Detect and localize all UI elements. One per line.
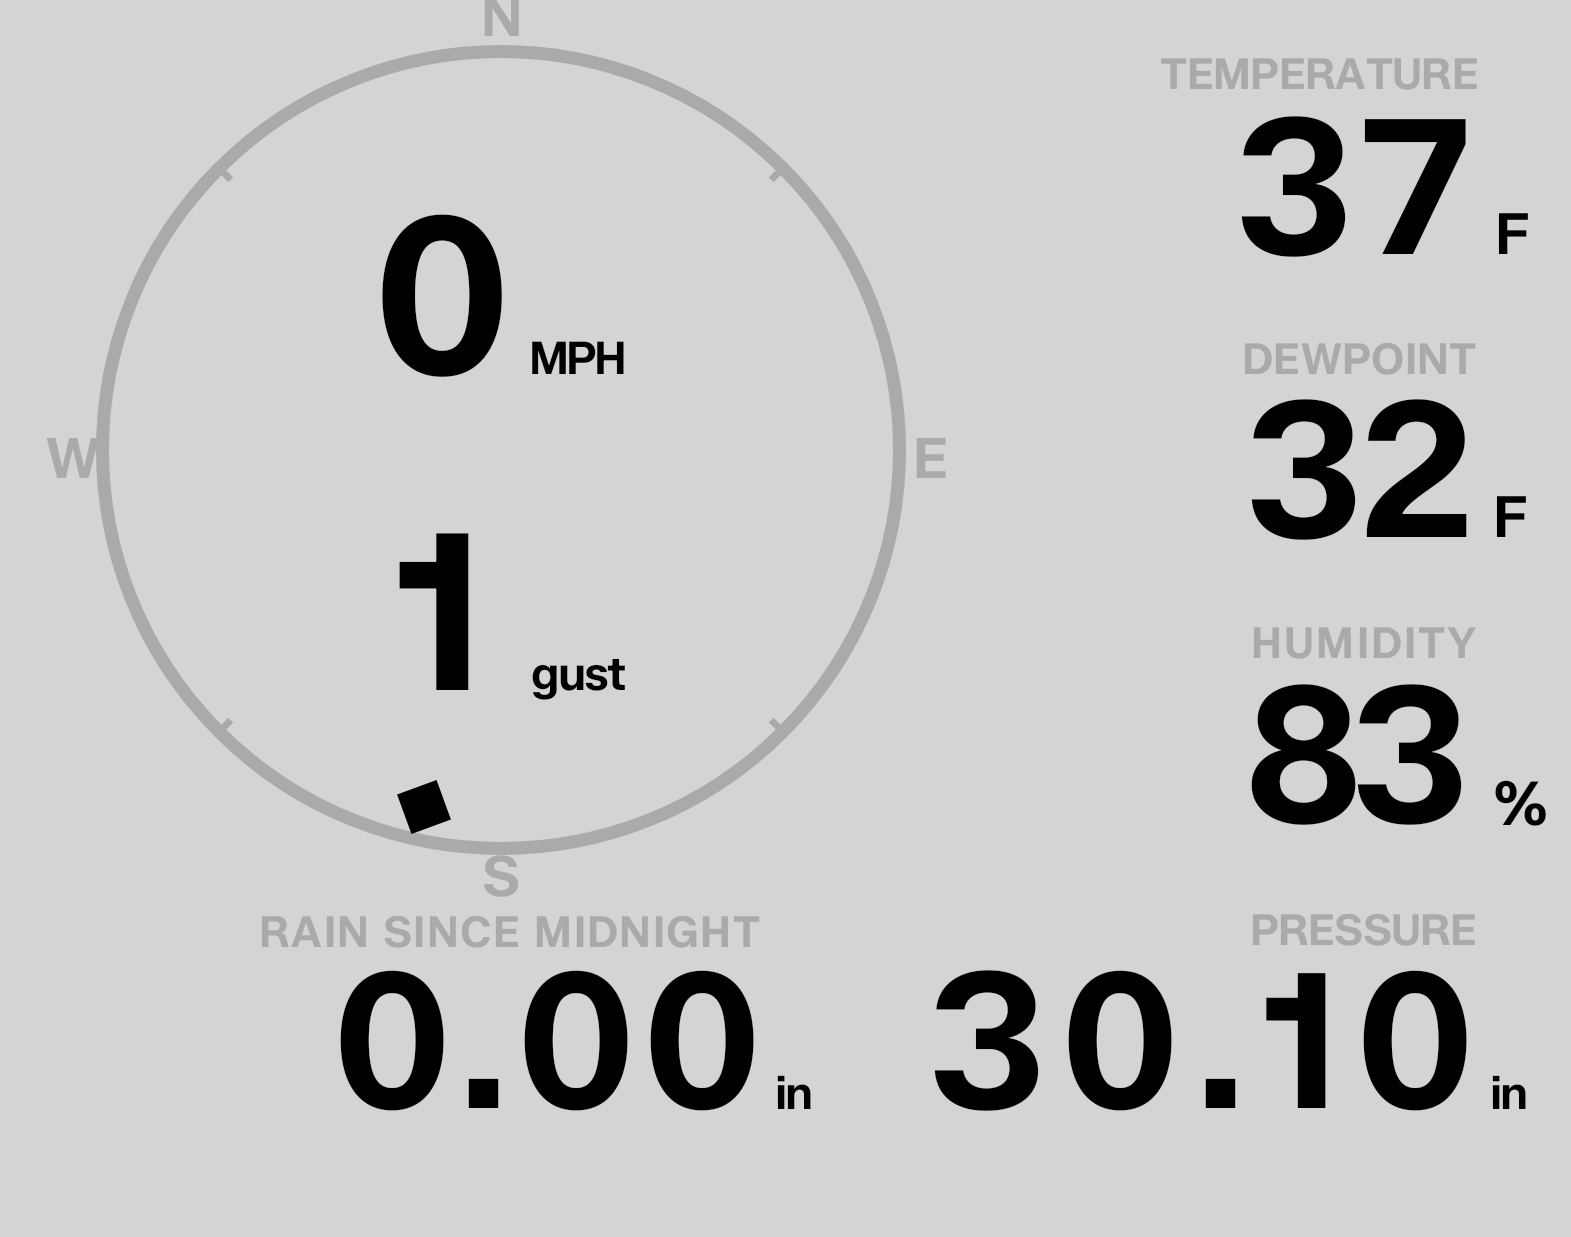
button[interactable]: Rain since midnight 0.00 inches bbox=[240, 895, 830, 1120]
button[interactable]: Pressure 30.10 inches bbox=[915, 895, 1555, 1120]
button[interactable]: Humidity 83 percent bbox=[1120, 598, 1571, 848]
button[interactable]: Temperature 37 F bbox=[1120, 30, 1571, 280]
button[interactable]: Wind speed and direction bbox=[40, 0, 965, 910]
button[interactable]: Dewpoint 32 F bbox=[1120, 315, 1571, 565]
